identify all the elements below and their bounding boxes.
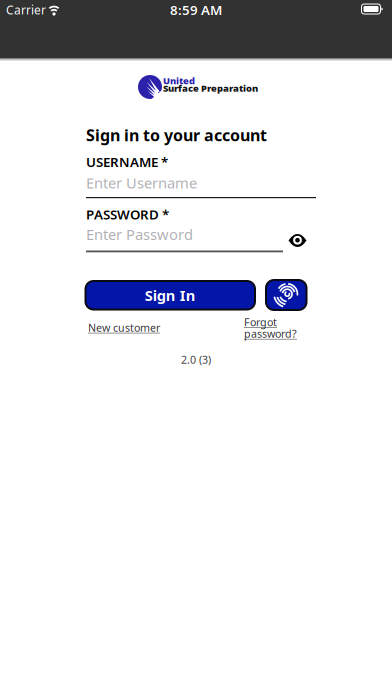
staticText: Sign in to your account — [86, 124, 267, 146]
staticText: Forgot — [244, 315, 277, 329]
staticText: PASSWORD * — [86, 205, 169, 223]
button[interactable]: Forgot — [244, 315, 297, 329]
staticText: 8:59 AM — [170, 1, 222, 19]
staticText: 2.0 (3) — [181, 352, 211, 367]
staticText: password? — [244, 327, 297, 341]
button[interactable]: Show password — [288, 234, 307, 247]
staticText: Sign In — [145, 285, 196, 305]
button[interactable]: Sign In — [85, 281, 255, 309]
button[interactable]: Sign in with Touch ID — [266, 280, 306, 310]
button[interactable]: New customer — [88, 320, 160, 335]
staticText: New customer — [88, 320, 160, 335]
staticText: United — [163, 74, 195, 87]
staticText: Carrier — [6, 2, 46, 18]
staticText: Enter Username — [86, 173, 197, 192]
staticText: Surface Preparation — [163, 82, 258, 94]
staticText: Enter Password — [86, 224, 193, 244]
staticText: USERNAME * — [86, 153, 168, 171]
